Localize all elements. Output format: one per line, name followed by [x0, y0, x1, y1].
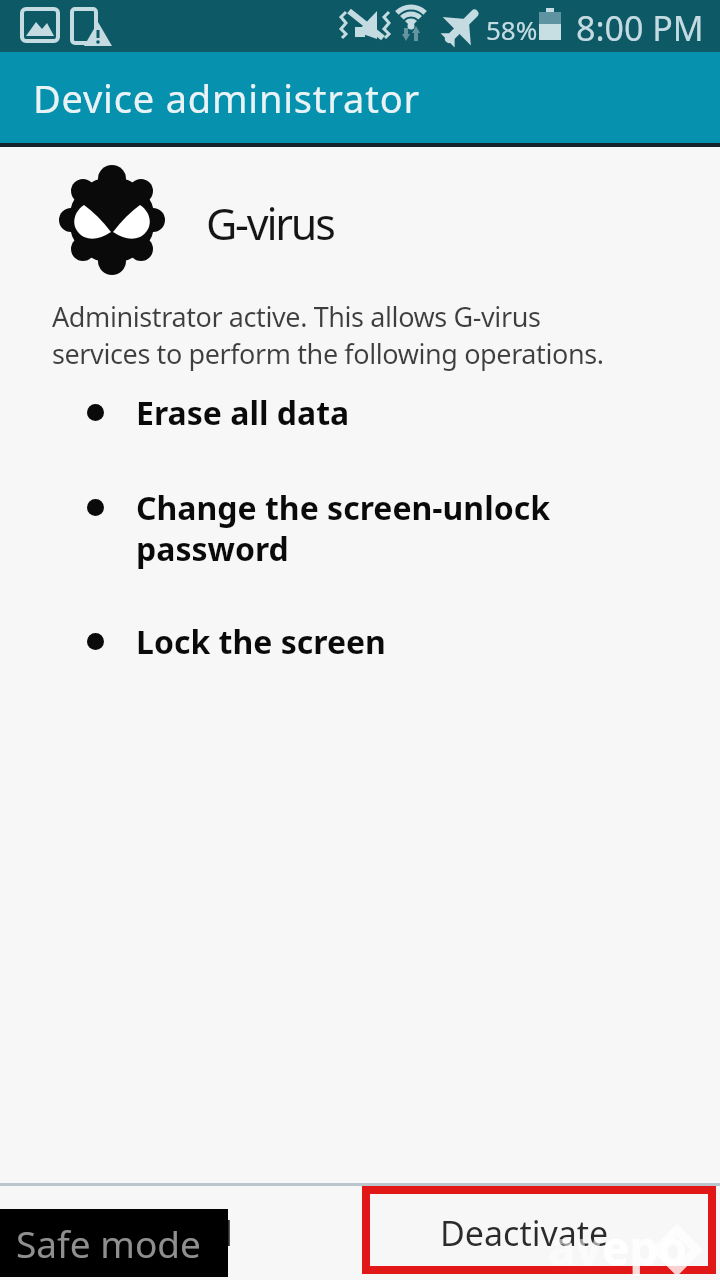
staticText: 58%: [486, 12, 538, 47]
staticText: Safe mode: [16, 1218, 201, 1268]
staticText: Deactivate: [440, 1210, 609, 1256]
staticText: services to perform the following operat…: [52, 335, 604, 372]
staticText: 8:00 PM: [576, 5, 704, 51]
staticText: Change the screen-unlock password: [136, 486, 551, 571]
staticText: Cancel: [127, 1210, 233, 1256]
button[interactable]: Cancel: [0, 1186, 360, 1280]
staticText: Administrator active. This allows G-viru…: [52, 298, 541, 335]
staticText: epo: [602, 1216, 688, 1279]
staticText: Erase all data: [136, 391, 350, 435]
staticText: Lock the screen: [136, 620, 386, 664]
staticText: ave: [548, 1216, 630, 1279]
staticText: Device administrator: [33, 72, 420, 124]
staticText: G-virus: [206, 194, 334, 253]
button[interactable]: Deactivate: [360, 1186, 720, 1280]
